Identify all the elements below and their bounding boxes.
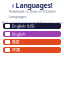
- button[interactable]: English: [3, 31, 61, 37]
- staticText: Notebook is Now in 8 Indian Languages: [8, 8, 55, 19]
- staticText: Languages!: [15, 1, 52, 10]
- staticText: ‹: [11, 0, 14, 11]
- button[interactable]: हिन्दी: [3, 39, 61, 45]
- staticText: English (US): [12, 23, 34, 29]
- staticText: Pick a language and define your own: [1, 20, 62, 25]
- staticText: हिन्दी: [12, 39, 19, 45]
- staticText: मराठी: [12, 47, 20, 53]
- button[interactable]: मराठी: [3, 47, 61, 53]
- button[interactable]: English (US): [3, 23, 61, 29]
- button[interactable]: Back: [11, 0, 14, 11]
- staticText: English: [12, 31, 26, 37]
